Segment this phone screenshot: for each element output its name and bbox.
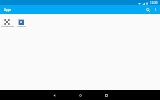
- staticText: 12:30: [150, 1, 158, 5]
- button[interactable]: Recent apps: [101, 90, 111, 100]
- button[interactable]: More options: [152, 6, 159, 13]
- button[interactable]: ConnectBot: [0, 18, 14, 30]
- staticText: Apps: [4, 8, 11, 12]
- button[interactable]: Search: [143, 5, 152, 14]
- button[interactable]: Home: [75, 90, 85, 100]
- button[interactable]: Back: [49, 90, 59, 100]
- staticText: ConnectBot: [1, 24, 14, 27]
- staticText: HyperIT: [17, 24, 26, 27]
- button[interactable]: HyperIT: [14, 18, 28, 30]
